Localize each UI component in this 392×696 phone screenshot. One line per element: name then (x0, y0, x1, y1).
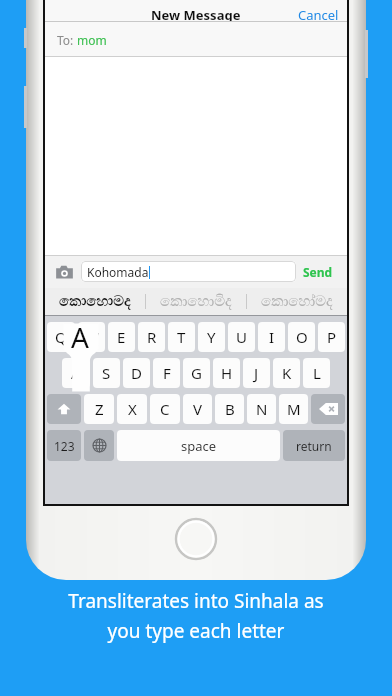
staticText: කොහොමිද (160, 294, 232, 309)
staticText: H (221, 363, 233, 383)
staticText: Transliterates into Sinhala as (0, 588, 392, 614)
button[interactable]: P (318, 322, 345, 352)
staticText: Q (55, 327, 67, 347)
button[interactable]: R (138, 322, 165, 352)
staticText: 123 (54, 438, 75, 454)
button[interactable]: කොහොමිද (146, 288, 246, 315)
button[interactable]: U (228, 322, 255, 352)
staticText: New Message (151, 6, 241, 24)
button[interactable]: H (213, 358, 240, 388)
staticText: Cancel (298, 6, 339, 24)
staticText: D (131, 363, 142, 383)
staticText: P (327, 327, 337, 347)
button[interactable]: T (168, 322, 195, 352)
staticText: To: (57, 32, 77, 48)
staticText: O (296, 327, 308, 347)
button[interactable]: C (150, 394, 180, 424)
staticText: V (193, 399, 203, 419)
button[interactable]: W (78, 322, 105, 352)
button[interactable]: L (303, 358, 330, 388)
staticText: Y (207, 327, 216, 347)
button[interactable]: X (117, 394, 147, 424)
button[interactable]: Switch keyboard (84, 430, 114, 461)
button[interactable]: 123 (47, 430, 81, 461)
staticText: J (254, 363, 259, 383)
button[interactable]: Cancel (290, 3, 347, 27)
button[interactable]: F (153, 358, 180, 388)
staticText: Send (303, 264, 333, 280)
staticText: කොහෝමද (261, 294, 333, 309)
button[interactable]: B (215, 394, 244, 424)
button[interactable]: To: (45, 22, 347, 57)
staticText: you type each letter (0, 618, 392, 644)
button[interactable]: M (279, 394, 308, 424)
staticText: Kohomada (87, 264, 149, 280)
staticText: C (160, 399, 170, 419)
button[interactable]: S (93, 358, 120, 388)
button[interactable]: A (62, 358, 90, 388)
button[interactable]: කොහොමද (45, 288, 145, 315)
staticText: Z (95, 399, 104, 419)
staticText: U (236, 327, 247, 347)
staticText: L (313, 363, 321, 383)
staticText: space (181, 437, 217, 455)
staticText: A (71, 318, 89, 356)
button[interactable]: O (288, 322, 315, 352)
staticText: I (269, 327, 275, 347)
button[interactable]: Camera (52, 260, 76, 284)
staticText: E (117, 327, 126, 347)
staticText: N (256, 399, 268, 419)
button[interactable]: Shift (47, 394, 81, 424)
staticText: G (191, 363, 202, 383)
button[interactable]: V (183, 394, 212, 424)
staticText: T (177, 327, 186, 347)
button[interactable]: G (183, 358, 210, 388)
button[interactable]: D (123, 358, 150, 388)
staticText: F (163, 363, 171, 383)
staticText: X (128, 399, 137, 419)
staticText: W (85, 327, 99, 347)
button[interactable]: Y (198, 322, 225, 352)
staticText: S (102, 363, 111, 383)
staticText: M (287, 399, 301, 419)
staticText: R (147, 327, 157, 347)
button[interactable]: E (108, 322, 135, 352)
button[interactable]: space (117, 430, 280, 461)
staticText: return (296, 438, 332, 454)
button[interactable]: Send (296, 260, 340, 284)
button[interactable]: කොහෝමද (247, 288, 347, 315)
button[interactable]: J (243, 358, 270, 388)
staticText: කොහොමද (59, 294, 131, 309)
button[interactable]: Backspace (311, 394, 345, 424)
staticText: K (282, 363, 292, 383)
staticText: B (225, 399, 235, 419)
button[interactable]: K (273, 358, 300, 388)
staticText: A (71, 363, 81, 383)
button[interactable]: I (258, 322, 285, 352)
button[interactable]: Kohomada (81, 261, 296, 282)
button[interactable]: return (283, 430, 345, 461)
button[interactable]: N (247, 394, 276, 424)
button[interactable]: Z (84, 394, 114, 424)
button[interactable]: Q (47, 322, 75, 352)
staticText: mom (77, 32, 107, 48)
